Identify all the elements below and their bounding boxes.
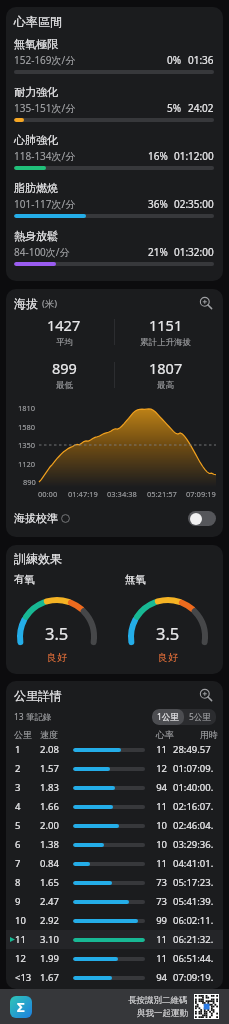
staticText: 94 <box>145 781 167 794</box>
staticText: 1350 <box>18 440 36 450</box>
staticText: 01:47:19 <box>68 489 98 499</box>
staticText: 12 <box>145 762 167 775</box>
button[interactable]: 11 <box>6 930 223 949</box>
button[interactable]: 12 <box>6 949 223 968</box>
staticText: 5% <box>167 101 182 115</box>
button[interactable]: 8 <box>6 873 223 892</box>
staticText: 05:21:57 <box>147 489 177 499</box>
staticText: 有氧 <box>14 573 35 586</box>
staticText: 0% <box>167 53 182 67</box>
staticText: 00:00 <box>38 489 58 499</box>
staticText: 03:34:38 <box>107 489 137 499</box>
staticText: 10 <box>15 914 39 927</box>
staticText: 速度 <box>40 729 73 740</box>
staticText: 99 <box>145 914 167 927</box>
staticText: 2.00 <box>40 819 67 832</box>
staticText: 11 <box>145 933 167 946</box>
staticText: 94 <box>145 971 167 984</box>
staticText: 9 <box>15 895 39 908</box>
button[interactable]: 1 <box>6 740 223 759</box>
staticText: 73 <box>145 876 167 889</box>
staticText: 4 <box>15 800 39 813</box>
staticText: 與我一起運動 <box>137 1008 188 1019</box>
staticText: 7 <box>15 857 39 870</box>
button[interactable]: 1公里 <box>152 709 184 725</box>
staticText: 3.5 <box>45 622 69 644</box>
staticText: 899 <box>52 358 77 378</box>
staticText: 良好 <box>47 651 67 664</box>
staticText: 04:41:01. <box>173 857 223 870</box>
button[interactable]: Expand altitude chart <box>196 295 216 311</box>
staticText: 3.10 <box>40 933 67 946</box>
staticText: 03:29:36. <box>173 838 223 851</box>
staticText: 11 <box>145 800 167 813</box>
staticText: 135-151次/分 <box>14 101 76 115</box>
button[interactable]: <13 <box>6 968 223 987</box>
button[interactable]: 4 <box>6 797 223 816</box>
staticText: 11 <box>15 933 39 946</box>
staticText: 用時 <box>200 729 218 740</box>
staticText: 10 <box>145 838 167 851</box>
staticText: 06:21:32. <box>173 933 223 946</box>
staticText: 1120 <box>18 459 36 469</box>
staticText: 5 <box>15 819 39 832</box>
staticText: 07:09:19. <box>173 971 223 984</box>
staticText: 07:09:19 <box>186 489 216 499</box>
staticText: 02:35:00 <box>174 197 214 211</box>
staticText: 11 <box>145 743 167 756</box>
staticText: 24:02 <box>188 101 214 115</box>
staticText: 3 <box>15 781 39 794</box>
other: QR code <box>195 995 218 1018</box>
staticText: 1.66 <box>40 800 67 813</box>
staticText: 890 <box>23 477 36 487</box>
staticText: 1公里 <box>157 711 179 723</box>
staticText: 0.84 <box>40 857 67 870</box>
staticText: 01:36 <box>188 53 214 67</box>
button[interactable]: 5 <box>6 816 223 835</box>
button[interactable]: 2 <box>6 759 223 778</box>
button[interactable]: 熱身放鬆 <box>14 229 214 266</box>
staticText: 1.83 <box>40 781 67 794</box>
staticText: 2.92 <box>40 914 67 927</box>
button[interactable]: 10 <box>6 911 223 930</box>
staticText: 6 <box>15 838 39 851</box>
button[interactable]: 耐力強化 <box>14 85 214 122</box>
staticText: 1810 <box>18 403 36 413</box>
staticText: 84-100次/分 <box>14 245 70 259</box>
staticText: 熱身放鬆 <box>14 229 58 243</box>
button[interactable]: 5公里 <box>184 709 216 725</box>
staticText: 1 <box>15 743 39 756</box>
button[interactable]: 6 <box>6 835 223 854</box>
staticText: 心率區間 <box>14 14 62 29</box>
button[interactable]: 無氧極限 <box>14 37 214 74</box>
staticText: 01:40:00. <box>173 781 223 794</box>
staticText: 1.67 <box>40 971 67 984</box>
button[interactable]: 海拔校準 <box>14 505 216 531</box>
staticText: 2 <box>15 762 39 775</box>
button[interactable]: 脂肪燃燒 <box>14 181 214 218</box>
staticText: 11 <box>145 857 167 870</box>
staticText: 11 <box>145 952 167 965</box>
button[interactable]: Expand kilometre details <box>196 687 216 703</box>
staticText: Σ <box>17 998 25 1016</box>
button[interactable]: 心肺強化 <box>14 133 214 170</box>
staticText: 02:16:07. <box>173 800 223 813</box>
staticText: 36% <box>148 197 168 211</box>
staticText: 21% <box>148 245 168 259</box>
button[interactable]: App logo <box>10 996 32 1018</box>
button[interactable]: 3 <box>6 778 223 797</box>
staticText: 公里詳情 <box>14 688 62 703</box>
button[interactable]: 7 <box>6 854 223 873</box>
staticText: 長按識別二維碼 <box>128 995 188 1006</box>
button[interactable]: 9 <box>6 892 223 911</box>
staticText: 1151 <box>149 315 183 335</box>
staticText: 5公里 <box>189 711 211 723</box>
staticText: 海拔 <box>14 295 42 311</box>
staticText: (米) <box>42 297 58 310</box>
staticText: 12 <box>15 952 39 965</box>
staticText: 16% <box>148 149 168 163</box>
staticText: 05:17:23. <box>173 876 223 889</box>
staticText: 01:12:00 <box>174 149 214 163</box>
staticText: 05:41:39. <box>173 895 223 908</box>
staticText: 無氧 <box>125 573 146 586</box>
